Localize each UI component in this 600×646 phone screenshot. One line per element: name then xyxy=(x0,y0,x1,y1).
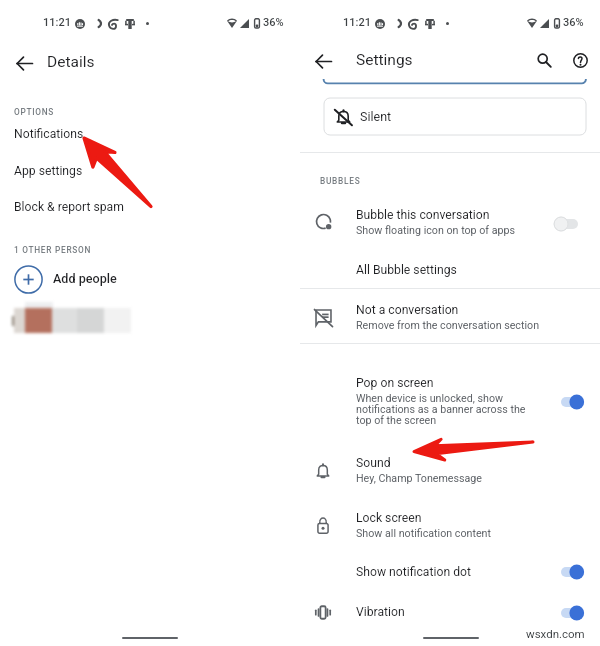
staticText: Block & report spam xyxy=(14,200,124,214)
button[interactable]: On xyxy=(558,562,594,582)
staticText: BUBBLES xyxy=(320,176,361,186)
button[interactable]: Add people xyxy=(0,264,300,296)
staticText: Add people xyxy=(53,271,117,286)
button[interactable]: Vibration xyxy=(300,600,600,628)
staticText: App settings xyxy=(14,164,83,178)
staticText: Show notification dot xyxy=(356,565,471,579)
button[interactable]: All Bubble settings xyxy=(300,258,600,288)
staticText: Details xyxy=(47,53,95,71)
staticText: Pop on screen xyxy=(356,376,434,390)
button[interactable]: Pop on screen xyxy=(300,373,600,431)
staticText: Vibration xyxy=(356,605,405,619)
button[interactable]: App settings xyxy=(0,161,300,191)
staticText: 36% xyxy=(263,16,284,29)
staticText: Sound xyxy=(356,456,391,470)
staticText: Remove from the conversation section xyxy=(356,319,540,332)
staticText: Lock screen xyxy=(356,511,422,525)
staticText: All Bubble settings xyxy=(356,263,457,277)
button[interactable]: Block & report spam xyxy=(0,197,300,227)
staticText: Notifications xyxy=(14,127,84,141)
staticText: Not a conversation xyxy=(356,303,459,317)
button[interactable]: Bubble this conversation xyxy=(300,204,600,244)
staticText: 1 OTHER PERSON xyxy=(14,245,92,255)
button[interactable]: Not a conversation xyxy=(300,301,600,343)
button[interactable]: Back xyxy=(10,49,38,77)
staticText: Bubble this conversation xyxy=(356,208,490,222)
button[interactable]: On xyxy=(558,603,594,623)
button[interactable]: Lock screen xyxy=(300,508,600,548)
staticText: Settings xyxy=(356,51,413,69)
staticText: When device is unlocked, show notificati… xyxy=(356,392,526,426)
button[interactable]: Notifications xyxy=(0,124,300,154)
button[interactable]: Back xyxy=(309,47,337,75)
staticText: Show floating icon on top of apps xyxy=(356,224,516,237)
button[interactable]: On xyxy=(558,392,594,412)
staticText: OPTIONS xyxy=(14,107,55,117)
staticText: 11:21 xyxy=(343,16,371,29)
button[interactable]: Show notification dot xyxy=(300,560,600,588)
button[interactable]: Silent xyxy=(324,98,586,135)
button[interactable]: Sound xyxy=(300,453,600,493)
staticText: Show all notification content xyxy=(356,527,491,540)
staticText: wsxdn.com xyxy=(526,627,585,640)
staticText: 36% xyxy=(563,16,584,29)
button[interactable]: Help xyxy=(566,46,594,74)
staticText: Silent xyxy=(360,109,392,124)
button[interactable]: Off xyxy=(552,214,588,234)
button[interactable]: Search xyxy=(530,46,558,74)
staticText: Hey, Champ Tonemessage xyxy=(356,472,483,485)
staticText: 11:21 xyxy=(43,16,71,29)
